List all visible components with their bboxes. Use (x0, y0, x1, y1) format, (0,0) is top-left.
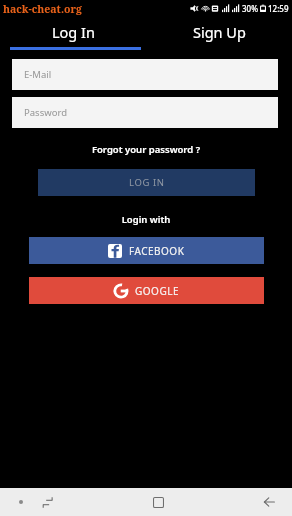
staticText: 30% (242, 3, 258, 14)
staticText: GOOGLE (135, 284, 179, 298)
button[interactable]: Log In (0, 17, 146, 47)
staticText: E-Mail (24, 68, 52, 81)
button[interactable]: Home (145, 489, 171, 515)
staticText: 12:59 (268, 3, 289, 14)
staticText: Password (24, 106, 67, 119)
staticText: FACEBOOK (129, 244, 185, 258)
button[interactable]: FACEBOOK (29, 237, 264, 264)
staticText: LOG IN (129, 176, 165, 189)
button[interactable]: Sign Up (146, 17, 292, 47)
button[interactable]: Password (12, 97, 278, 128)
button[interactable]: Menu indicator (10, 491, 32, 513)
button[interactable]: LOG IN (38, 169, 255, 196)
button[interactable]: Recents (34, 489, 60, 515)
button[interactable]: Back (256, 489, 282, 515)
staticText: Login with (0, 213, 292, 226)
staticText: Log In (52, 22, 95, 42)
button[interactable]: GOOGLE (29, 277, 264, 304)
button[interactable]: E-Mail (12, 59, 278, 90)
staticText: Forgot your password ? (0, 143, 292, 156)
staticText: Sign Up (193, 22, 246, 42)
staticText: hack-cheat.org (3, 2, 82, 16)
